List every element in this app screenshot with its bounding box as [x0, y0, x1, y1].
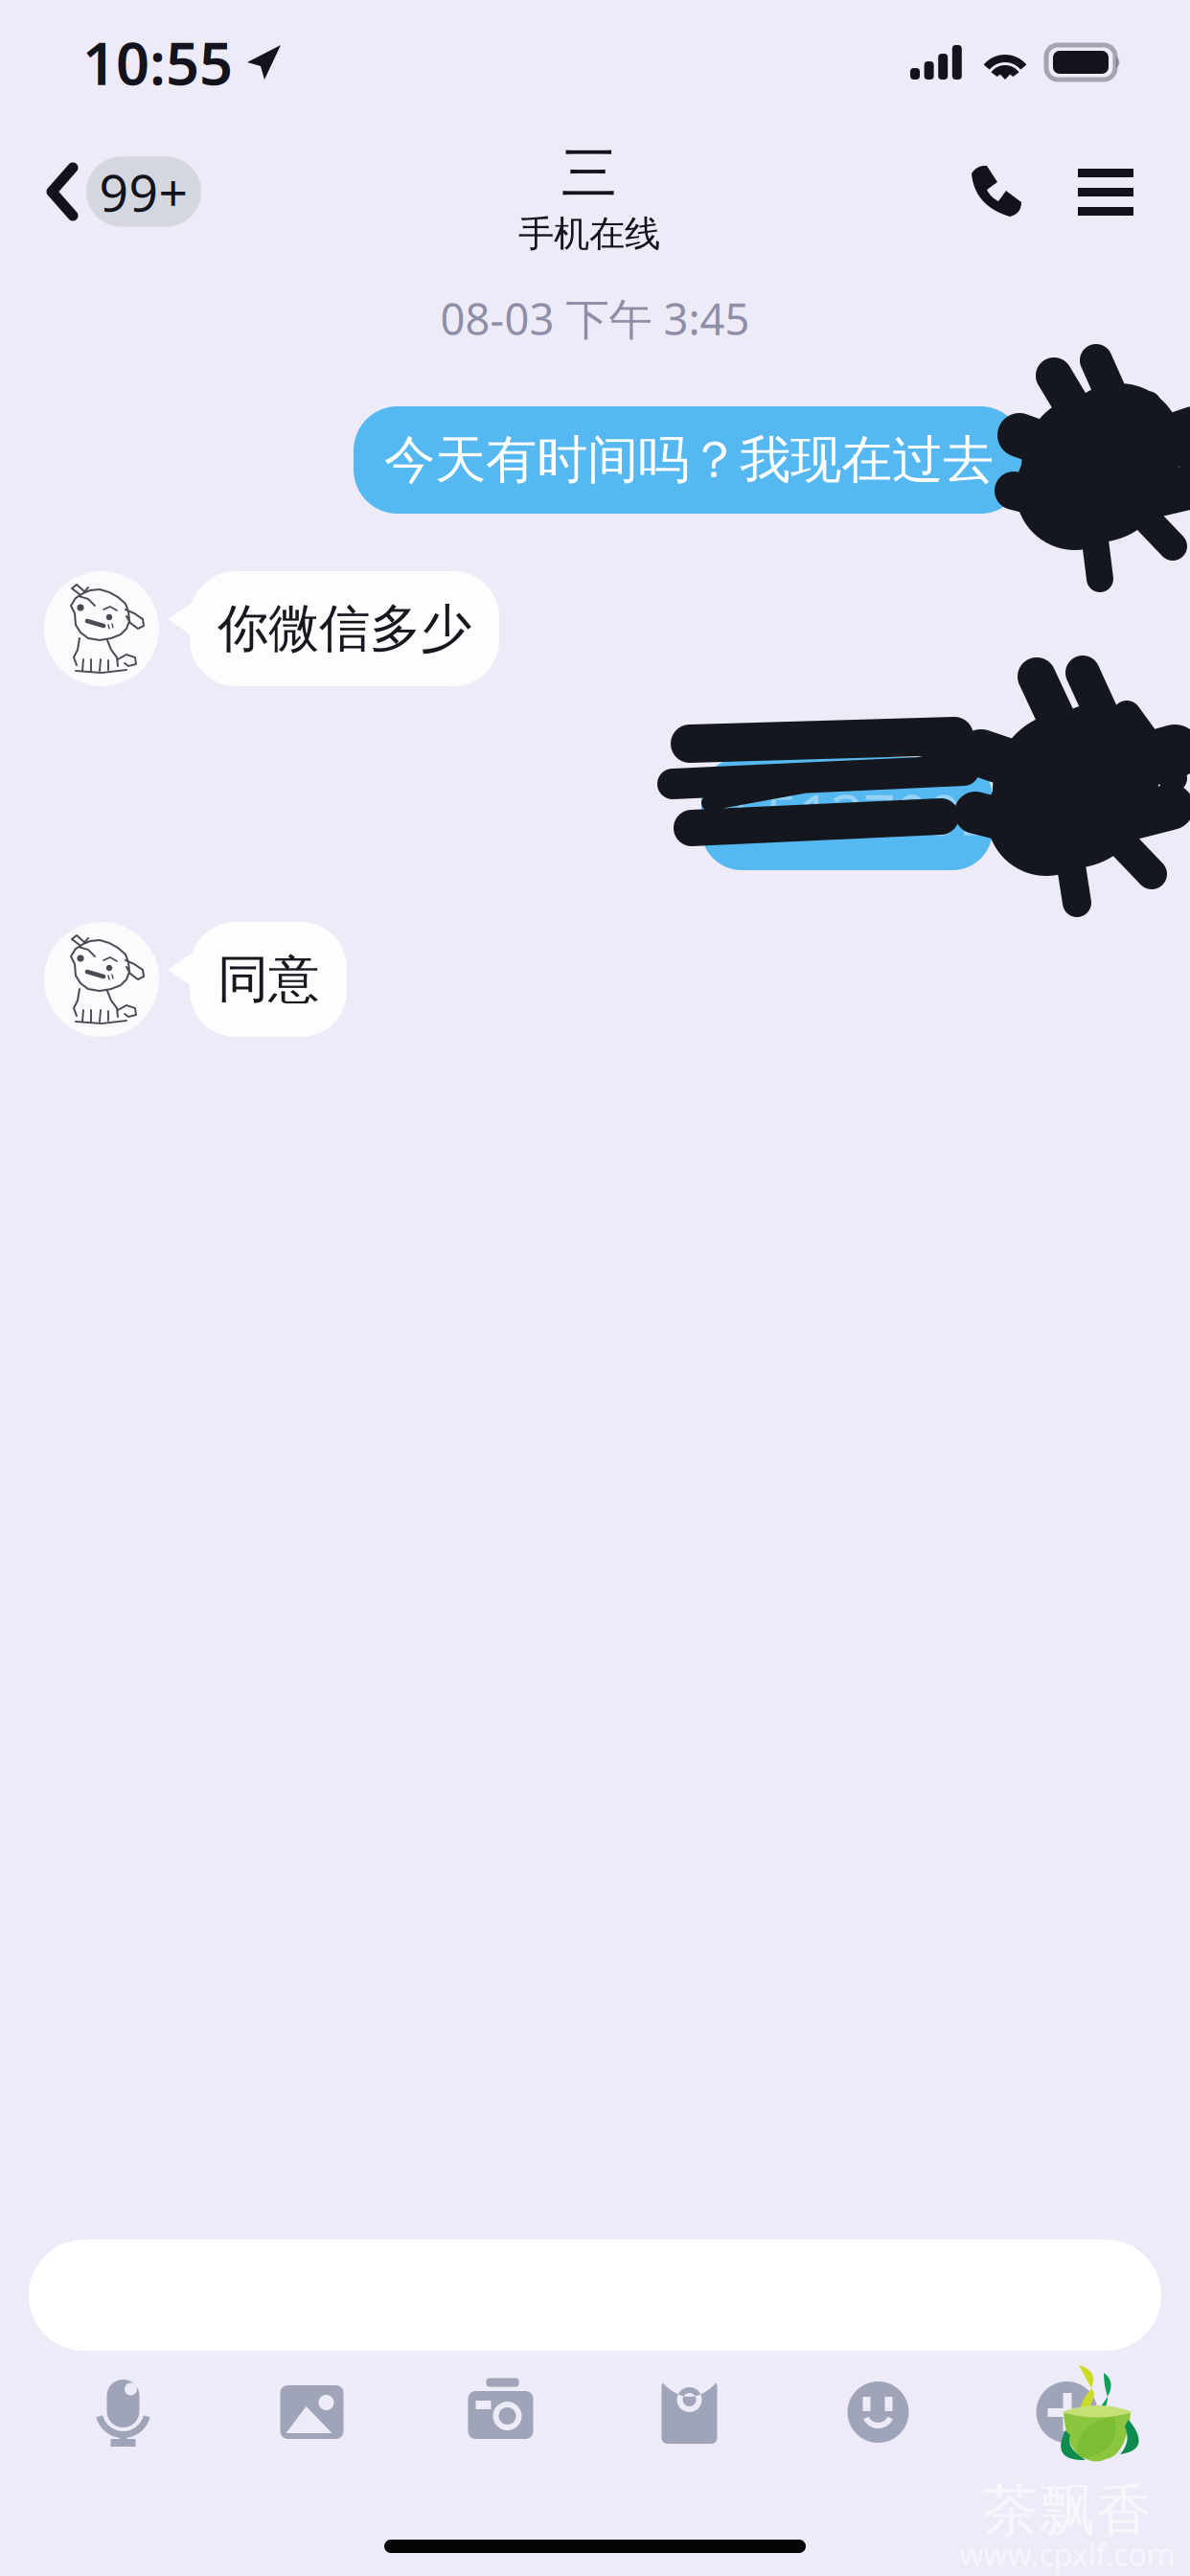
staticText: 99+: [99, 158, 188, 226]
staticText: 同意: [217, 948, 319, 1011]
staticText: 365137092: [700, 776, 994, 851]
button[interactable]: Voice message: [29, 2364, 217, 2460]
staticText: 今天有时间吗？我现在过去: [384, 429, 994, 491]
staticText: 手机在线: [518, 212, 660, 256]
button[interactable]: Call: [960, 157, 1029, 226]
staticText: www.cpxlf.com: [960, 2534, 1175, 2575]
button[interactable]: Red packet: [595, 2364, 784, 2460]
button[interactable]: Photos: [217, 2364, 406, 2460]
button[interactable]: Back: [0, 125, 215, 259]
button[interactable]: Menu: [1071, 157, 1140, 226]
button[interactable]: Emoji: [784, 2364, 973, 2460]
staticText: 10:55: [82, 23, 233, 101]
staticText: 你微信多少: [217, 597, 471, 660]
staticText: 茶飘香: [983, 2476, 1152, 2545]
button[interactable]: Camera: [406, 2364, 595, 2460]
button[interactable]: More: [973, 2364, 1161, 2460]
staticText: 三: [561, 139, 618, 208]
staticText: 08-03 下午 3:45: [440, 289, 750, 347]
